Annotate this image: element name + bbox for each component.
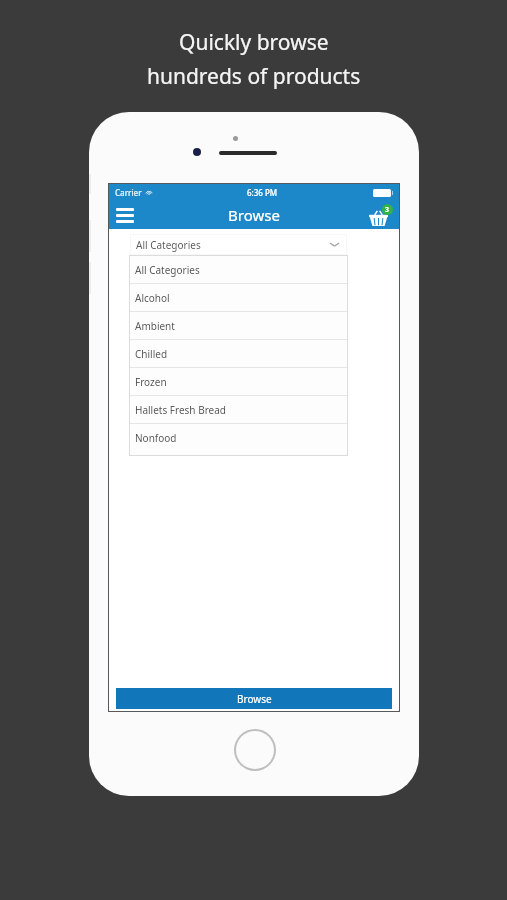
button[interactable]: Browse [116,688,392,709]
staticText: Chilled [135,347,168,361]
staticText: All Categories [135,263,200,277]
staticText: 6:36 PM [247,187,278,198]
staticText: Frozen [135,375,167,389]
staticText: Quickly browse [179,28,329,57]
staticText: Browse [237,692,272,706]
staticText: All Categories [136,238,201,252]
staticText: hundreds of products [147,62,361,91]
button[interactable]: Chilled [130,340,347,368]
button[interactable]: Ambient [130,312,347,340]
staticText: Browse [228,205,280,225]
button[interactable]: Nonfood [130,424,347,452]
staticText: Alcohol [135,291,170,305]
button[interactable]: All Categories [130,256,347,284]
button[interactable]: Alcohol [130,284,347,312]
button[interactable]: Open navigation menu [109,203,141,228]
button[interactable]: Hallets Fresh Bread [130,396,347,424]
staticText: Hallets Fresh Bread [135,403,226,417]
button[interactable]: All Categories [130,234,347,255]
staticText: Ambient [135,319,175,333]
staticText: Carrier [115,187,142,198]
button[interactable]: Frozen [130,368,347,396]
staticText: Nonfood [135,431,177,445]
staticText: 3 [385,205,390,215]
button[interactable]: Shopping basket, 3 items [363,204,399,226]
